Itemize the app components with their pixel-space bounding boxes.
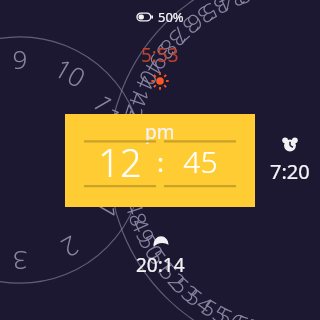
button[interactable]: Moon phase — [136, 235, 185, 278]
button[interactable]: pm — [65, 114, 255, 207]
staticText: 5:53 — [141, 42, 179, 68]
other: Alarm — [281, 135, 299, 153]
staticText: pm — [145, 119, 175, 145]
staticText: 7:20 — [270, 158, 310, 185]
staticText: 12 — [98, 136, 142, 188]
staticText: 50% — [158, 8, 184, 26]
button[interactable]: Battery 50 percent — [133, 6, 188, 28]
other: Moon phase — [152, 235, 170, 248]
staticText: 20:14 — [136, 252, 185, 278]
other: Battery 50 percent — [137, 12, 153, 22]
button[interactable]: 12 — [84, 114, 156, 207]
button[interactable]: Alarm — [270, 135, 310, 185]
other: Sunrise — [151, 72, 169, 90]
staticText: : — [157, 144, 164, 179]
button[interactable]: 45 — [164, 114, 236, 207]
staticText: 45 — [183, 141, 218, 182]
button[interactable]: 5:53 — [141, 42, 179, 90]
